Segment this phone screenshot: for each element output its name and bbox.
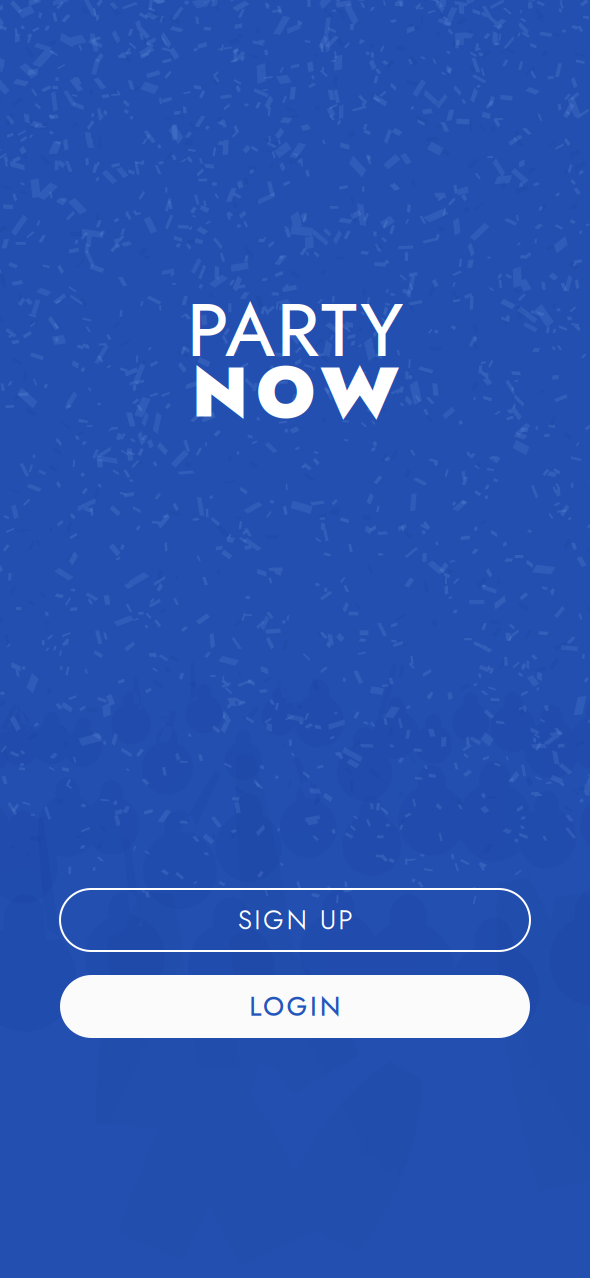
staticText: NOW: [163, 341, 427, 443]
button[interactable]: SIGN UP: [60, 889, 530, 951]
staticText: SIGN UP: [227, 901, 363, 939]
staticText: LOGIN: [239, 987, 351, 1026]
staticText: PARTY: [163, 276, 427, 384]
button[interactable]: LOGIN: [60, 975, 530, 1038]
